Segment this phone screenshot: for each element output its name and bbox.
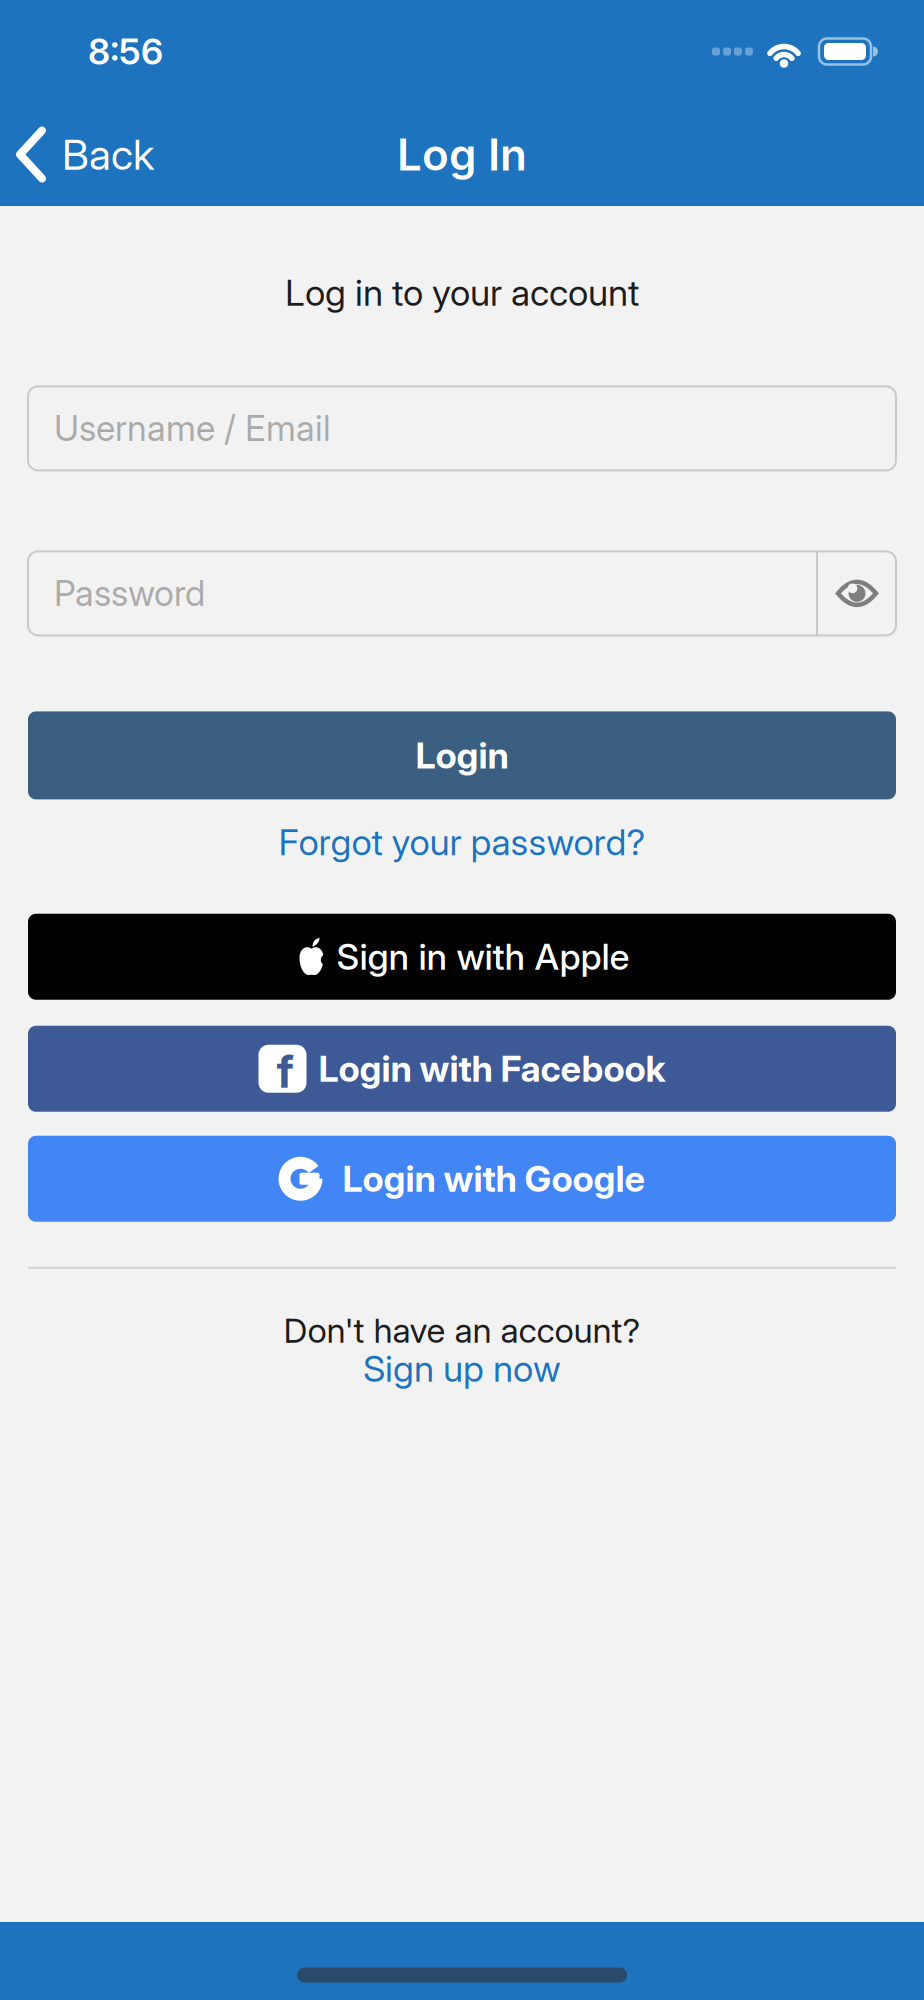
staticText: f	[276, 1046, 294, 1097]
staticText: Password	[54, 573, 205, 613]
button[interactable]: Sign up now	[363, 1348, 561, 1389]
button[interactable]: f	[28, 1026, 896, 1112]
staticText: Login with Facebook	[318, 1048, 665, 1089]
staticText: Log in to your account	[285, 272, 639, 313]
staticText: Back	[62, 130, 154, 179]
button[interactable]: Back	[0, 126, 154, 182]
staticText: 8:56	[88, 31, 163, 72]
staticText: Sign in with Apple	[336, 936, 629, 977]
button[interactable]: Sign in with Apple	[28, 914, 896, 1000]
button[interactable]: Username / Email	[28, 386, 896, 470]
staticText: Log In	[397, 129, 527, 180]
button[interactable]: Password	[28, 551, 816, 635]
staticText: Sign up now	[363, 1348, 561, 1389]
button[interactable]: Login with Google	[28, 1136, 896, 1222]
staticText: Don't have an account?	[283, 1311, 640, 1350]
staticText: Username / Email	[54, 408, 331, 448]
staticText: Login	[415, 735, 508, 776]
button[interactable]: Show password	[818, 551, 896, 635]
staticText: Forgot your password?	[278, 821, 645, 863]
staticText: Login with Google	[342, 1158, 645, 1199]
button[interactable]: Forgot your password?	[278, 821, 645, 863]
button[interactable]: Login	[28, 711, 896, 799]
